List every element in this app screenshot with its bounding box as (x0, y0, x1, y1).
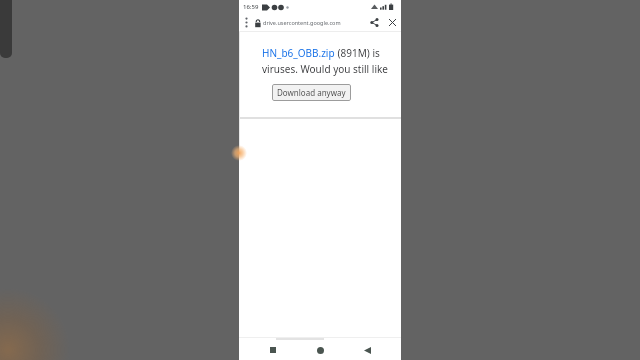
staticText: viruses. Would you still like (262, 62, 401, 76)
button[interactable]: More options (239, 14, 253, 31)
staticText: 16:59 (243, 3, 259, 11)
staticText: HN_b6_OBB.zip (262, 46, 335, 60)
button[interactable]: Download anyway (272, 84, 351, 101)
button[interactable]: Back (354, 340, 380, 360)
staticText: (891M) is (335, 46, 380, 60)
button[interactable]: Recent apps (260, 340, 286, 360)
staticText: drive.usercontent.google.com (263, 19, 365, 26)
button[interactable]: Home (307, 340, 333, 360)
button[interactable]: Share (365, 14, 383, 31)
button[interactable]: Close (383, 14, 401, 31)
staticText: Download anyway (277, 87, 346, 98)
